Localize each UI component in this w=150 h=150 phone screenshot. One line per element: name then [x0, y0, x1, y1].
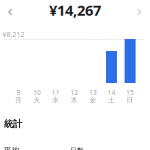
- staticText: 13: [89, 88, 97, 97]
- button[interactable]: Previous week: [0, 2, 21, 22]
- staticText: 平均: [3, 146, 19, 150]
- staticText: 12: [70, 88, 78, 97]
- staticText: ¥14,267: [49, 0, 101, 20]
- staticText: 統計: [4, 118, 22, 130]
- staticText: 水: [52, 96, 59, 104]
- staticText: 9: [16, 88, 20, 97]
- staticText: 木: [71, 96, 78, 104]
- staticText: 月: [15, 96, 22, 104]
- button[interactable]: Next week: [128, 2, 150, 22]
- staticText: 日数: [70, 146, 84, 150]
- staticText: 15: [126, 88, 134, 97]
- staticText: 火: [34, 96, 41, 104]
- staticText: 14: [107, 88, 115, 97]
- staticText: 日: [127, 96, 134, 104]
- staticText: ¥8,212: [2, 30, 24, 39]
- staticText: 11: [52, 88, 60, 97]
- staticText: 金: [89, 96, 96, 104]
- staticText: 土: [108, 96, 115, 104]
- staticText: 10: [33, 88, 41, 97]
